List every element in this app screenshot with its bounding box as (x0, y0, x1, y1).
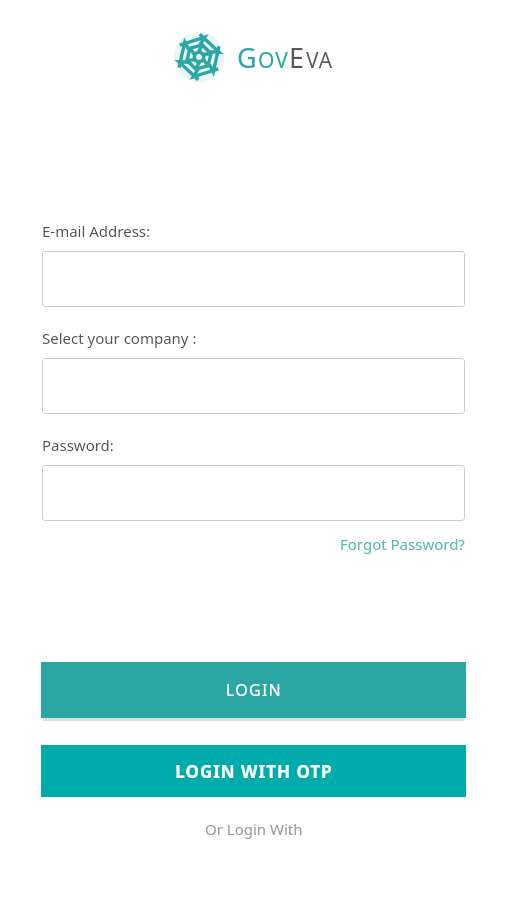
button[interactable]: Password input field (42, 465, 465, 521)
staticText: LOGIN (226, 679, 282, 701)
staticText: E (289, 39, 306, 76)
button[interactable]: Forgot Password? (340, 534, 465, 554)
staticText: VA (306, 46, 334, 75)
staticText: LOGIN WITH OTP (175, 760, 333, 783)
staticText: Forgot Password? (340, 534, 465, 554)
button[interactable]: E-mail Address input field (42, 251, 465, 307)
staticText: G (237, 39, 258, 76)
staticText: OV (258, 46, 289, 75)
staticText: Select your company : (42, 328, 197, 348)
staticText: Password: (42, 435, 114, 455)
button[interactable]: LOGIN WITH OTP (41, 745, 466, 797)
staticText: Or Login With (205, 819, 303, 839)
staticText: E-mail Address: (42, 221, 151, 241)
button[interactable]: Select your company dropdown (42, 358, 465, 414)
button[interactable]: LOGIN (41, 662, 466, 718)
